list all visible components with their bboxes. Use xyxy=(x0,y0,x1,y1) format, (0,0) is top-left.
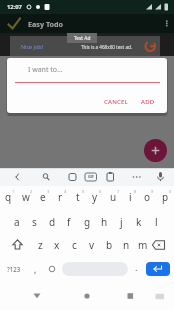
staticText: c xyxy=(72,238,77,252)
staticText: p xyxy=(162,190,169,204)
button[interactable] xyxy=(146,262,170,276)
staticText: 8 xyxy=(134,189,137,194)
staticText: v xyxy=(89,238,95,252)
staticText: r xyxy=(58,190,63,204)
button[interactable] xyxy=(118,284,142,308)
button[interactable] xyxy=(25,284,49,308)
staticText: e xyxy=(40,190,46,204)
staticText: s xyxy=(32,215,37,229)
staticText: Nice job! xyxy=(21,43,43,50)
button[interactable] xyxy=(0,33,174,56)
staticText: i xyxy=(129,190,132,204)
staticText: Test Ad xyxy=(74,35,91,42)
staticText: 7 xyxy=(117,189,120,194)
staticText: k xyxy=(136,215,142,229)
button[interactable] xyxy=(62,262,128,276)
staticText: q xyxy=(5,190,12,204)
staticText: ⋮ xyxy=(163,19,171,28)
button[interactable] xyxy=(144,139,167,162)
staticText: l xyxy=(155,215,158,229)
staticText: 4 xyxy=(64,189,67,194)
staticText: z xyxy=(38,238,43,252)
staticText: ADD xyxy=(141,98,155,106)
staticText: Easy Todo xyxy=(28,19,64,29)
staticText: 1 xyxy=(12,189,15,194)
staticText: y xyxy=(92,190,98,204)
staticText: t xyxy=(76,190,80,204)
staticText: 12:07 xyxy=(7,3,22,11)
staticText: 3 xyxy=(47,189,50,194)
staticText: a xyxy=(14,215,20,229)
staticText: m xyxy=(138,238,148,252)
staticText: This is a 468x60 test ad. xyxy=(81,44,133,50)
staticText: n xyxy=(123,238,130,252)
button[interactable] xyxy=(75,284,99,308)
staticText: 9 xyxy=(151,189,154,194)
staticText: GIF xyxy=(88,174,94,179)
staticText: u xyxy=(110,190,117,204)
staticText: . xyxy=(135,261,138,273)
button[interactable]: ⋮ xyxy=(160,14,174,33)
staticText: , xyxy=(34,263,37,275)
button[interactable]: CANCEL xyxy=(100,95,132,109)
staticText: 0 xyxy=(169,189,172,194)
button[interactable]: ADD xyxy=(137,95,159,109)
staticText: o xyxy=(144,190,151,204)
staticText: 6 xyxy=(99,189,102,194)
staticText: 5 xyxy=(82,189,85,194)
staticText: x xyxy=(54,238,60,252)
staticText: d xyxy=(49,215,56,229)
staticText: CANCEL xyxy=(104,98,128,106)
staticText: f xyxy=(67,215,71,229)
staticText: 2 xyxy=(30,189,33,194)
staticText: b xyxy=(106,238,113,252)
staticText: w xyxy=(22,190,30,204)
staticText: g xyxy=(84,215,91,229)
staticText: I want to... xyxy=(28,65,63,75)
staticText: j xyxy=(120,215,123,229)
staticText: ?123 xyxy=(7,265,21,273)
staticText: h xyxy=(101,215,108,229)
